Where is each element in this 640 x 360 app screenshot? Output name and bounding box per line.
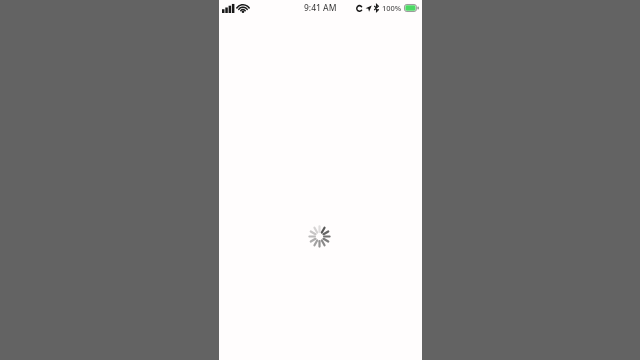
staticText: 9:41 AM xyxy=(304,2,337,14)
staticText: 100% xyxy=(382,3,402,13)
